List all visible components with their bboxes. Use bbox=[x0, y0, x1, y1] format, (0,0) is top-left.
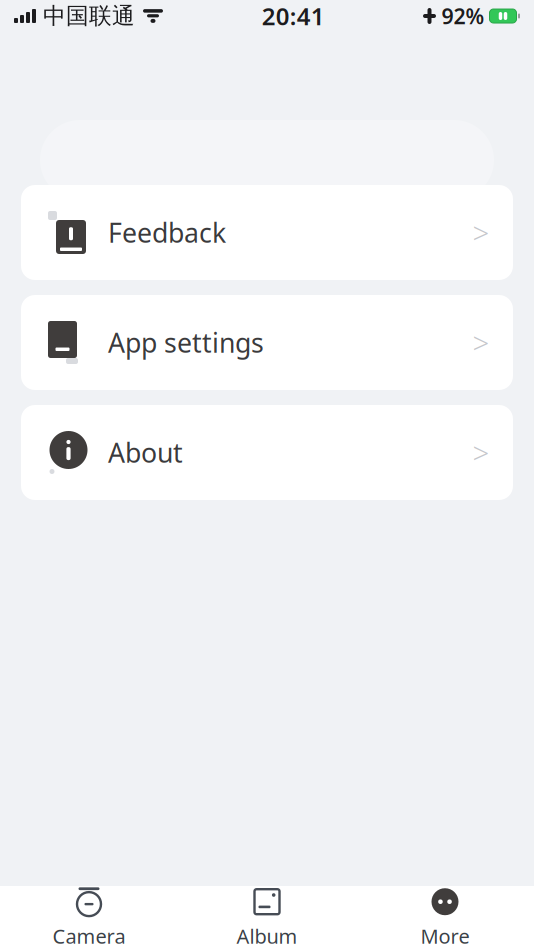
staticText: Camera bbox=[52, 923, 125, 949]
staticText: App settings bbox=[108, 325, 264, 360]
button[interactable]: More bbox=[356, 886, 534, 950]
button[interactable]: Camera bbox=[0, 886, 178, 950]
staticText: > bbox=[472, 433, 489, 472]
button[interactable]: Feedback bbox=[21, 185, 513, 280]
staticText: 20:41 bbox=[262, 0, 325, 32]
staticText: Album bbox=[236, 923, 297, 949]
staticText: > bbox=[472, 213, 489, 252]
button[interactable]: App settings bbox=[21, 295, 513, 390]
staticText: > bbox=[472, 323, 489, 362]
staticText: About bbox=[108, 435, 183, 470]
staticText: 92% bbox=[441, 2, 484, 30]
staticText: Feedback bbox=[108, 215, 226, 250]
staticText: More bbox=[420, 923, 469, 949]
staticText: 中国联通 bbox=[43, 2, 135, 30]
button[interactable]: About bbox=[21, 405, 513, 500]
button[interactable]: Album bbox=[178, 886, 356, 950]
